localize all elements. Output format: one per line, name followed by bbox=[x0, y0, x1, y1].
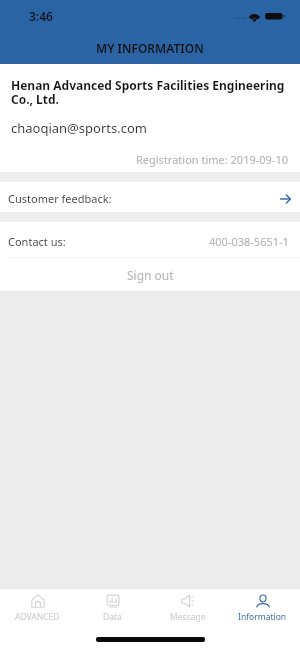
staticText: chaoqian@sports.com bbox=[11, 119, 147, 137]
staticText: MY INFORMATION bbox=[96, 40, 204, 56]
button[interactable]: ADVANCED bbox=[0, 589, 75, 634]
staticText: Message bbox=[170, 611, 206, 623]
staticText: 3:46 bbox=[29, 8, 53, 24]
button[interactable]: Sign out bbox=[0, 258, 300, 291]
staticText: Henan Advanced Sports Facilities Enginee… bbox=[11, 77, 291, 108]
staticText: Customer feedback: bbox=[8, 191, 112, 206]
other: Open customer feedback bbox=[280, 195, 291, 203]
staticText: Information bbox=[238, 611, 287, 623]
button[interactable]: Data bbox=[75, 589, 150, 634]
staticText: 400-038-5651-1 bbox=[209, 234, 289, 249]
staticText: Registration time: 2019-09-10 bbox=[0, 152, 288, 167]
button[interactable]: Information bbox=[225, 589, 300, 634]
staticText: Sign out bbox=[127, 267, 174, 283]
button[interactable]: Customer feedback: bbox=[0, 182, 300, 212]
button[interactable]: Contact us: bbox=[0, 222, 300, 257]
staticText: Contact us: bbox=[8, 234, 66, 249]
staticText: Data bbox=[103, 611, 122, 623]
button[interactable]: Message bbox=[150, 589, 225, 634]
staticText: ADVANCED bbox=[15, 611, 60, 623]
